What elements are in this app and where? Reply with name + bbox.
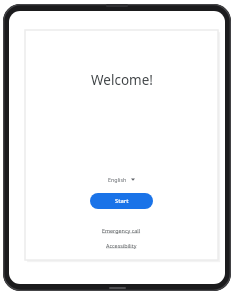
button[interactable]: Start (90, 193, 153, 209)
staticText: Accessibility (106, 242, 137, 249)
button[interactable]: English (103, 174, 140, 185)
button[interactable]: Emergency call (98, 226, 145, 235)
button[interactable]: Accessibility (102, 241, 141, 250)
other: Choose language (131, 178, 135, 181)
staticText: Welcome! (91, 71, 153, 89)
staticText: Emergency call (102, 227, 141, 234)
staticText: Start (115, 197, 129, 205)
staticText: English (108, 176, 127, 183)
